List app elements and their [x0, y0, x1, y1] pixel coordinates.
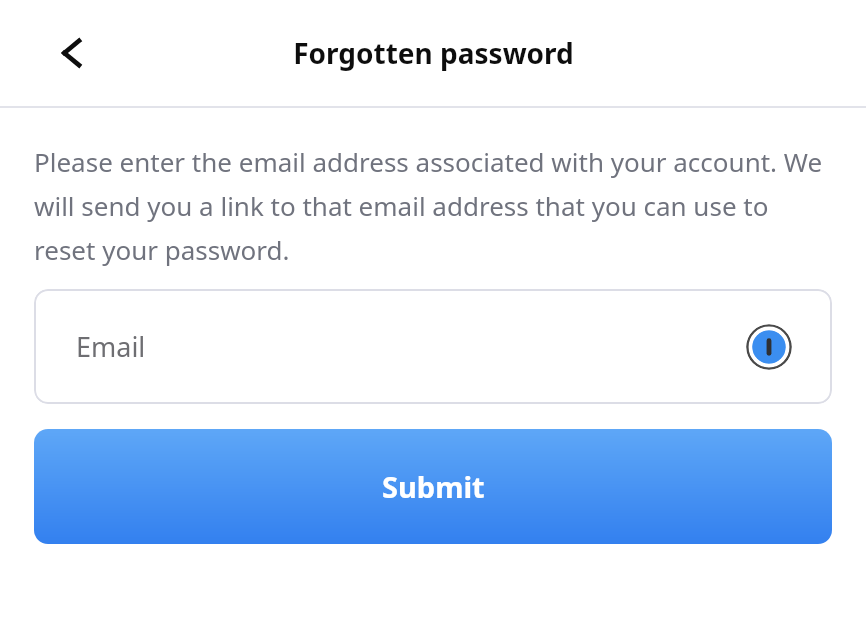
button[interactable]: Submit	[34, 429, 832, 544]
button[interactable]: Back	[46, 27, 98, 79]
staticText: Please enter the email address associate…	[34, 144, 836, 267]
staticText: Forgotten password	[293, 34, 574, 72]
button[interactable]: Email	[34, 289, 832, 404]
staticText: Submit	[382, 467, 485, 506]
button[interactable]: Fill with 1Password	[746, 324, 792, 370]
staticText: Email	[76, 328, 146, 365]
